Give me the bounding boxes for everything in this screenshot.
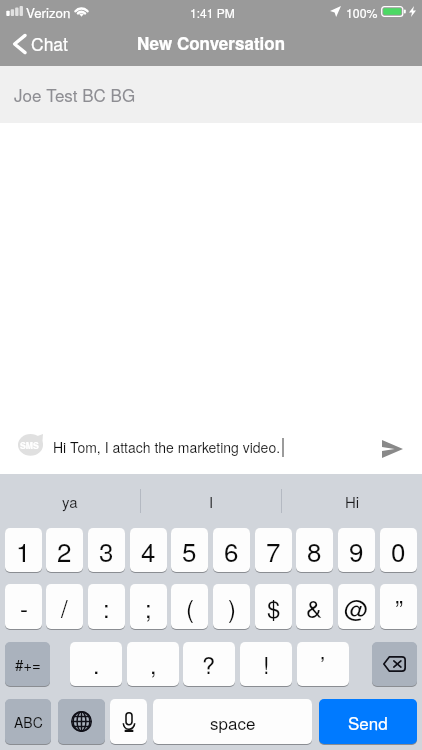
staticText: Hi <box>345 491 360 512</box>
button[interactable]: 7 <box>255 528 292 573</box>
button[interactable]: ’ <box>297 642 349 687</box>
button[interactable]: 5 <box>171 528 208 573</box>
staticText: ! <box>263 647 270 681</box>
button[interactable]: Chat <box>0 26 82 61</box>
staticText: Hi Tom, I attach the marketing video. <box>53 437 281 457</box>
button[interactable]: ABC <box>5 699 51 745</box>
staticText: ABC <box>14 712 43 732</box>
staticText: 4 <box>141 532 156 569</box>
staticText: ya <box>62 491 78 512</box>
staticText: ( <box>186 590 194 624</box>
button[interactable]: ( <box>171 584 208 630</box>
button[interactable]: - <box>5 584 42 630</box>
staticText: 5 <box>182 532 197 569</box>
staticText: ” <box>395 590 403 624</box>
button[interactable]: ” <box>380 584 417 630</box>
staticText: $ <box>267 590 281 624</box>
button[interactable]: ) <box>213 584 250 630</box>
button[interactable]: , <box>127 642 179 687</box>
button[interactable]: ? <box>183 642 235 687</box>
staticText: Send <box>348 710 388 734</box>
button[interactable]: Dictation <box>110 699 147 745</box>
staticText: SMS <box>20 439 39 451</box>
button[interactable]: 4 <box>130 528 167 573</box>
button[interactable]: $ <box>255 584 292 630</box>
staticText: 100% <box>346 4 378 22</box>
staticText: 8 <box>307 532 322 569</box>
staticText: 2 <box>57 532 72 569</box>
button[interactable]: 1 <box>5 528 42 573</box>
staticText: Chat <box>31 31 68 56</box>
button[interactable]: ; <box>130 584 167 630</box>
staticText: 9 <box>349 532 364 569</box>
button[interactable]: : <box>88 584 125 630</box>
button[interactable]: 8 <box>296 528 333 573</box>
staticText: 3 <box>99 532 114 569</box>
staticText: , <box>150 647 157 681</box>
button[interactable]: 0 <box>380 528 417 573</box>
staticText: New Conversation <box>137 31 286 55</box>
button[interactable]: @ <box>338 584 375 630</box>
button[interactable]: 6 <box>213 528 250 573</box>
staticText: space <box>210 710 256 734</box>
button[interactable]: / <box>46 584 83 630</box>
staticText: & <box>306 590 323 624</box>
button[interactable]: . <box>70 642 122 687</box>
button[interactable]: & <box>296 584 333 630</box>
staticText: - <box>20 590 28 624</box>
staticText: I <box>209 491 214 512</box>
staticText: Joe Test BC BG <box>14 82 136 106</box>
staticText: 6 <box>224 532 239 569</box>
staticText: 1 <box>16 532 31 569</box>
staticText: 7 <box>266 532 281 569</box>
button[interactable]: 9 <box>338 528 375 573</box>
button[interactable]: space <box>153 699 312 745</box>
button[interactable]: Switch keyboard <box>58 699 105 745</box>
staticText: ; <box>145 590 152 624</box>
button[interactable]: Hi <box>282 474 422 528</box>
staticText: Verizon <box>26 3 71 22</box>
staticText: ? <box>202 647 216 681</box>
button[interactable]: 2 <box>46 528 83 573</box>
button[interactable]: I <box>141 474 281 528</box>
button[interactable]: #+= <box>5 642 50 687</box>
staticText: #+= <box>15 654 41 675</box>
staticText: : <box>103 590 110 624</box>
staticText: . <box>93 647 100 681</box>
button[interactable]: 3 <box>88 528 125 573</box>
staticText: 0 <box>391 532 406 569</box>
button[interactable]: Send message <box>375 432 409 466</box>
staticText: 1:41 PM <box>190 4 235 21</box>
button[interactable]: Send <box>319 699 417 745</box>
staticText: ) <box>228 590 236 624</box>
staticText: / <box>61 590 68 624</box>
button[interactable]: ya <box>0 474 140 528</box>
staticText: ’ <box>320 647 326 681</box>
button[interactable]: Backspace <box>372 642 417 687</box>
button[interactable]: ! <box>240 642 292 687</box>
staticText: @ <box>344 590 369 624</box>
